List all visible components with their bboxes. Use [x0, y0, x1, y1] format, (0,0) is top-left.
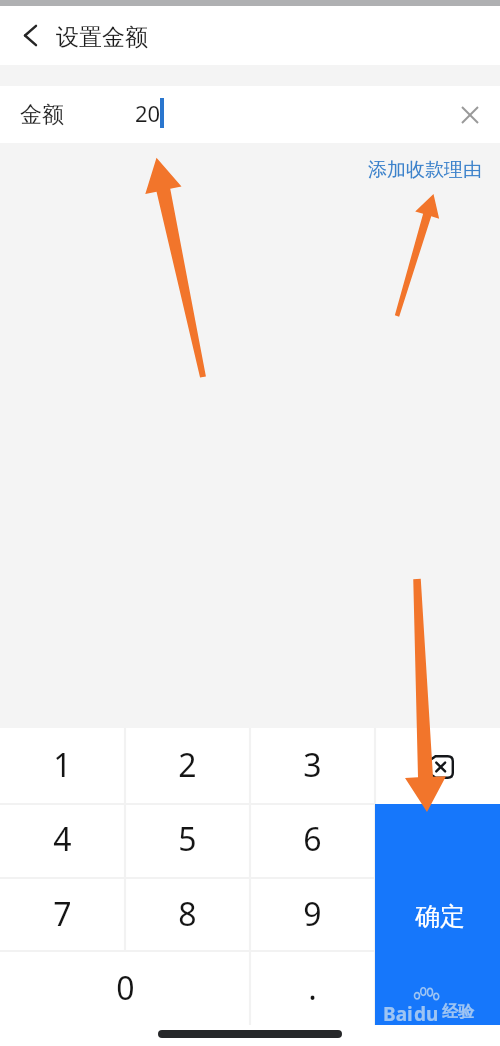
staticText: 1: [53, 743, 72, 787]
button[interactable]: 确定: [375, 804, 500, 1025]
staticText: 20: [135, 98, 161, 128]
button[interactable]: 8: [125, 877, 250, 951]
staticText: 9: [303, 892, 322, 936]
staticText: 8: [178, 892, 197, 936]
staticText: 添加收款理由: [368, 158, 482, 182]
button[interactable]: Back: [0, 6, 56, 65]
staticText: Bai: [383, 1001, 413, 1027]
staticText: 2: [178, 743, 197, 787]
staticText: du: [414, 1001, 439, 1027]
button[interactable]: 3: [250, 728, 375, 802]
button[interactable]: 7: [0, 877, 125, 951]
staticText: 7: [53, 892, 72, 936]
staticText: .: [308, 966, 317, 1010]
staticText: 金额: [20, 101, 64, 129]
staticText: 6: [303, 817, 322, 861]
button[interactable]: 1: [0, 728, 125, 802]
staticText: 3: [303, 743, 322, 787]
button[interactable]: Clear amount: [442, 86, 498, 143]
staticText: 5: [178, 817, 197, 861]
button[interactable]: 5: [125, 802, 250, 876]
button[interactable]: .: [250, 951, 375, 1025]
staticText: 经验: [442, 1002, 474, 1022]
button[interactable]: 9: [250, 877, 375, 951]
button[interactable]: 4: [0, 802, 125, 876]
staticText: 4: [53, 817, 72, 861]
button[interactable]: 添加收款理由: [360, 150, 490, 190]
button[interactable]: Backspace: [375, 728, 500, 802]
button[interactable]: 2: [125, 728, 250, 802]
button[interactable]: 0: [0, 951, 250, 1025]
staticText: 确定: [415, 901, 465, 932]
staticText: 设置金额: [56, 23, 148, 52]
button[interactable]: 6: [250, 802, 375, 876]
staticText: 0: [116, 966, 135, 1010]
